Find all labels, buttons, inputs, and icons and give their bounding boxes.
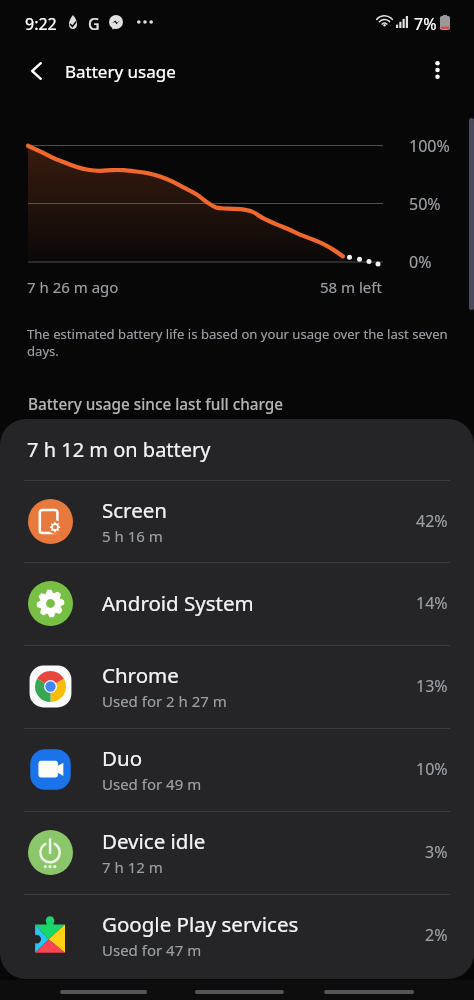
staticText: Screen — [102, 496, 167, 524]
button[interactable]: Duo — [0, 728, 474, 810]
button[interactable]: Home — [195, 990, 284, 994]
button[interactable]: Screen — [0, 480, 474, 562]
staticText: 5 h 16 m — [102, 526, 163, 546]
staticText: 7 h 26 m ago — [27, 277, 119, 297]
staticText: Battery usage since last full charge — [28, 394, 284, 415]
staticText: 13% — [416, 675, 448, 697]
staticText: 7 h 12 m on battery — [27, 436, 211, 463]
button[interactable]: Back — [324, 990, 414, 994]
button[interactable]: More options — [418, 51, 456, 89]
staticText: Chrome — [102, 661, 179, 689]
staticText: The estimated battery life is based on y… — [27, 325, 448, 360]
staticText: Google Play services — [102, 910, 299, 938]
staticText: G — [88, 13, 100, 35]
staticText: 2% — [425, 924, 448, 946]
button[interactable]: Recents — [60, 990, 147, 994]
staticText: 58 m left — [320, 277, 382, 297]
button[interactable]: Google Play services — [0, 894, 474, 976]
staticText: 3% — [425, 841, 448, 863]
staticText: Device idle — [102, 827, 206, 855]
staticText: 7% — [414, 13, 437, 35]
staticText: 42% — [416, 510, 448, 532]
staticText: 50% — [409, 193, 441, 215]
staticText: Battery usage — [65, 60, 176, 83]
button[interactable]: Device idle — [0, 811, 474, 893]
staticText: Android System — [102, 589, 254, 617]
staticText: Duo — [102, 744, 143, 772]
staticText: Used for 2 h 27 m — [102, 691, 227, 711]
button[interactable]: Back — [17, 52, 55, 90]
staticText: 9:22 — [25, 13, 57, 35]
staticText: Used for 49 m — [102, 774, 202, 794]
staticText: 7 h 12 m — [102, 857, 163, 877]
button[interactable]: Android System — [0, 562, 474, 644]
button[interactable]: Chrome — [0, 645, 474, 727]
staticText: 10% — [416, 758, 448, 780]
staticText: 0% — [409, 251, 432, 273]
staticText: 100% — [409, 135, 450, 157]
staticText: 14% — [416, 592, 448, 614]
staticText: Used for 47 m — [102, 940, 202, 960]
